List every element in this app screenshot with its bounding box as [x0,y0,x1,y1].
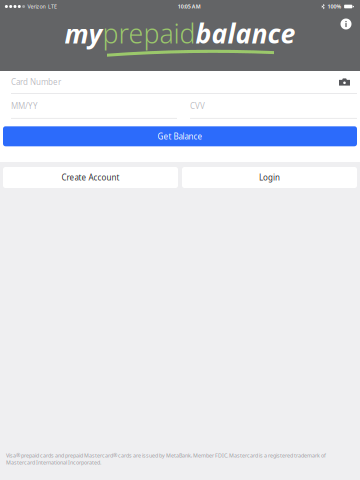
button[interactable]: Login [182,167,357,188]
staticText: CVV [190,101,205,111]
button[interactable]: Create Account [3,167,178,188]
staticText: Visa® prepaid cards and prepaid Masterca… [6,452,326,466]
button[interactable]: Get Balance [3,126,357,146]
button[interactable]: Information [336,14,356,34]
staticText: Verizon [27,3,45,10]
staticText: my [64,15,102,51]
staticText: balance [195,15,295,51]
staticText: LTE [48,3,57,10]
staticText: MM/YY [11,101,38,111]
button[interactable]: Scan card [339,78,350,86]
staticText: prepaid [102,15,195,51]
staticText: Create Account [61,172,119,183]
staticText: Login [259,172,280,183]
staticText: Card Number [11,77,61,87]
staticText: 100% [327,3,341,10]
staticText: 10:05 AM [178,3,201,10]
staticText: Get Balance [157,131,202,142]
